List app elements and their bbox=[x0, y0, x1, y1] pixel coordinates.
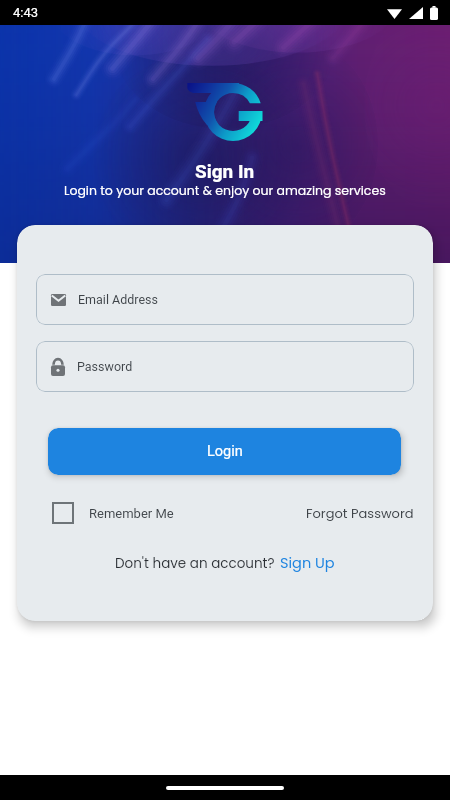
staticText: Sign In bbox=[195, 160, 255, 182]
button[interactable]: Remember Me bbox=[52, 502, 174, 524]
staticText: Login to your account & enjoy our amazin… bbox=[64, 182, 386, 199]
staticText: Password bbox=[77, 359, 133, 374]
other: Logo bbox=[184, 80, 266, 146]
staticText: Don't have an account? bbox=[115, 554, 275, 573]
button[interactable]: Login bbox=[48, 428, 401, 475]
staticText: Sign Up bbox=[280, 553, 335, 573]
button[interactable]: Forgot Password bbox=[306, 500, 414, 526]
staticText: Remember Me bbox=[89, 506, 174, 521]
staticText: Forgot Password bbox=[306, 504, 414, 522]
staticText: Login bbox=[207, 443, 243, 460]
button[interactable]: Email Address bbox=[36, 274, 414, 325]
button[interactable]: Sign Up bbox=[280, 553, 335, 573]
staticText: Email Address bbox=[78, 292, 158, 307]
staticText: 4:43 bbox=[13, 5, 39, 20]
button[interactable]: Password bbox=[36, 341, 414, 392]
